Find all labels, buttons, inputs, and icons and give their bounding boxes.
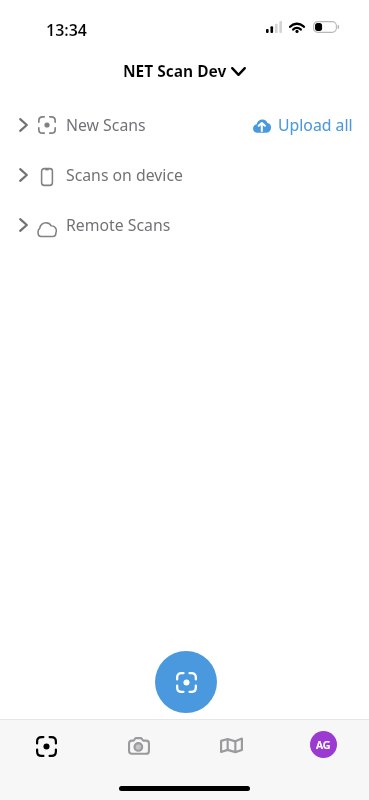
staticText: Upload all [278,114,353,136]
button[interactable]: Camera [93,722,185,770]
button[interactable]: Scans [0,722,93,770]
staticText: NET Scan Dev [123,60,227,81]
staticText: AG [316,738,331,752]
button[interactable]: Upload all [250,110,353,140]
button[interactable]: Remote Scans [0,200,369,250]
button[interactable]: Account [310,731,337,758]
button[interactable]: Map [185,722,277,770]
button[interactable]: New scan [155,651,217,713]
staticText: Scans on device [66,164,183,186]
button[interactable]: New Scans [0,100,369,150]
staticText: New Scans [66,114,146,136]
button[interactable]: NET Scan Dev [119,58,250,83]
staticText: 13:34 [46,19,88,41]
staticText: Remote Scans [66,214,171,236]
button[interactable]: Scans on device [0,150,369,200]
